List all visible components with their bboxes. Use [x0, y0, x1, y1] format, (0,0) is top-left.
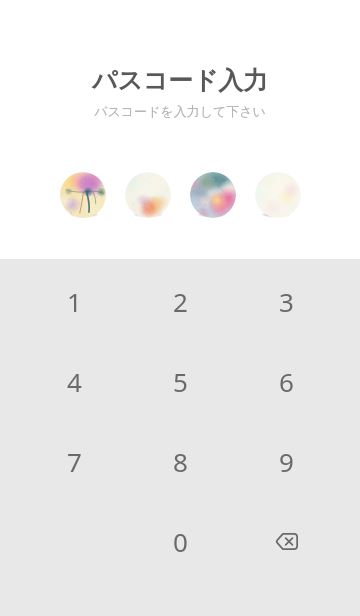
staticText: 0	[173, 524, 188, 559]
staticText: 7	[67, 444, 82, 479]
button[interactable]: 2	[140, 261, 220, 341]
staticText: パスコードを入力して下さい	[94, 103, 266, 119]
button[interactable]: 5	[140, 341, 220, 421]
button[interactable]: 3	[246, 261, 326, 341]
button[interactable]: 9	[246, 421, 326, 501]
staticText: 6	[279, 364, 294, 399]
staticText: 9	[279, 444, 294, 479]
button[interactable]: Delete	[246, 501, 326, 581]
staticText: 2	[173, 284, 188, 319]
staticText: 1	[67, 284, 82, 319]
button[interactable]: 0	[140, 501, 220, 581]
staticText: 4	[67, 364, 82, 399]
button[interactable]: 7	[34, 421, 114, 501]
button[interactable]: 1	[34, 261, 114, 341]
button[interactable]: 4	[34, 341, 114, 421]
staticText: 3	[279, 284, 294, 319]
staticText: パスコード入力	[92, 65, 268, 96]
staticText: 5	[173, 364, 188, 399]
button[interactable]: 8	[140, 421, 220, 501]
staticText: 8	[173, 444, 188, 479]
button[interactable]: 6	[246, 341, 326, 421]
